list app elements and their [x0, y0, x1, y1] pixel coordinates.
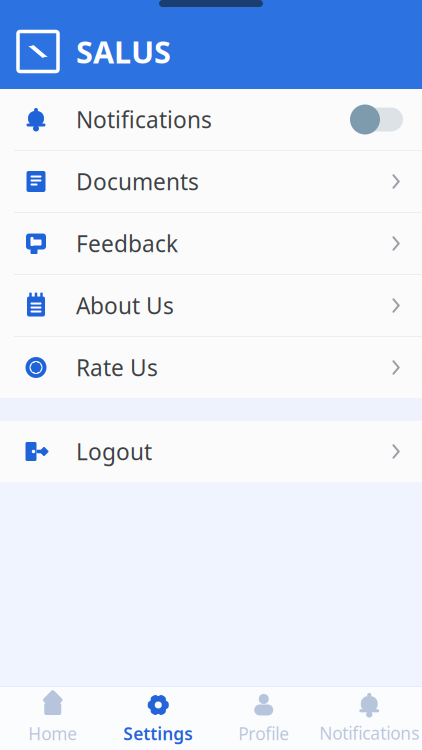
staticText: Rate Us	[76, 352, 158, 382]
button[interactable]: Documents	[0, 151, 422, 213]
button[interactable]: Rate Us	[0, 337, 422, 398]
button[interactable]: Settings	[105, 684, 211, 750]
staticText: Settings	[123, 722, 193, 745]
staticText: About Us	[76, 290, 174, 320]
staticText: Documents	[76, 166, 199, 196]
staticText: SALUS	[76, 31, 171, 72]
button[interactable]: About Us	[0, 275, 422, 337]
staticText: Logout	[76, 436, 152, 466]
staticText: Notifications	[319, 722, 419, 745]
button[interactable]: Profile	[211, 684, 316, 750]
staticText: Notifications	[76, 104, 212, 134]
staticText: Profile	[238, 722, 289, 745]
staticText: Home	[28, 722, 77, 745]
staticText: Feedback	[76, 228, 178, 258]
button[interactable]: Feedback	[0, 213, 422, 275]
button[interactable]: Logout	[0, 421, 422, 482]
button[interactable]: Notifications	[316, 684, 422, 750]
button[interactable]: Notifications	[0, 89, 422, 151]
button[interactable]: Home	[0, 684, 105, 750]
